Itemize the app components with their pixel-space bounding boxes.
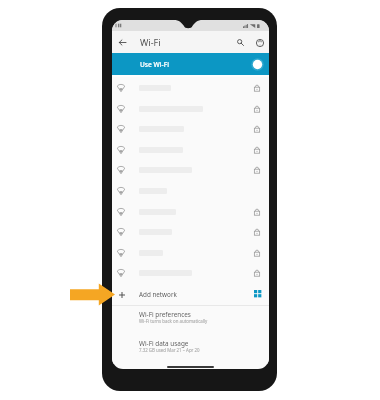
staticText: Wi-Fi (140, 36, 161, 48)
staticText: Use Wi-Fi (140, 60, 169, 69)
button[interactable] (112, 159, 269, 180)
staticText: Wi-Fi preferences (139, 310, 191, 319)
staticText: Add network (139, 290, 177, 299)
button[interactable]: Use Wi-Fi (112, 53, 269, 75)
button[interactable]: Wi-Fi preferences (112, 306, 269, 335)
button[interactable]: Help (253, 36, 266, 49)
other: Pointer arrow (70, 283, 115, 306)
button[interactable] (112, 180, 269, 201)
button[interactable] (112, 201, 269, 222)
staticText: Wi-Fi data usage (139, 339, 189, 348)
button[interactable]: Back (116, 36, 129, 49)
button[interactable] (112, 242, 269, 263)
button[interactable] (112, 118, 269, 139)
button[interactable] (112, 77, 269, 98)
button[interactable]: Search (234, 36, 247, 49)
button[interactable] (112, 139, 269, 160)
button[interactable]: Add network (112, 283, 269, 305)
staticText: Wi-Fi turns back on automatically (139, 318, 208, 324)
staticText: 7.32 GB used Mar 21 – Apr 20 (139, 347, 200, 353)
button[interactable]: Wi-Fi data usage (112, 335, 269, 364)
button[interactable] (112, 98, 269, 119)
button[interactable] (112, 221, 269, 242)
button[interactable] (112, 262, 269, 283)
